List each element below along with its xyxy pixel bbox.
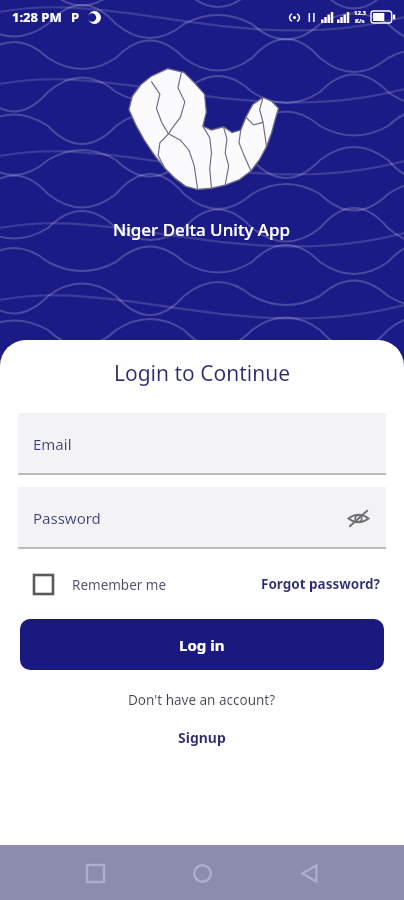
staticText: 12.3 bbox=[354, 9, 366, 17]
staticText: P bbox=[71, 8, 80, 26]
button[interactable]: Signup bbox=[168, 724, 236, 751]
staticText: Password bbox=[33, 508, 101, 528]
button[interactable]: Recent apps bbox=[73, 851, 117, 895]
staticText: Email bbox=[33, 434, 72, 454]
staticText: 1:28 PM bbox=[12, 8, 62, 26]
staticText: Log in bbox=[179, 635, 225, 655]
staticText: Don't have an account? bbox=[128, 691, 276, 709]
staticText: Signup bbox=[178, 728, 226, 747]
staticText: Niger Delta Unity App bbox=[113, 218, 291, 241]
button[interactable]: Back bbox=[287, 851, 331, 895]
button[interactable]: Forgot password? bbox=[259, 571, 382, 597]
button[interactable]: Email bbox=[18, 413, 386, 475]
staticText: Remember me bbox=[72, 576, 167, 594]
button[interactable]: Password bbox=[18, 487, 386, 549]
staticText: Forgot password? bbox=[261, 575, 380, 593]
staticText: Login to Continue bbox=[114, 359, 290, 388]
button[interactable]: Log in bbox=[20, 619, 384, 670]
button[interactable]: Show password bbox=[343, 503, 373, 533]
staticText: K/s bbox=[355, 17, 365, 25]
button[interactable]: Remember me bbox=[34, 575, 173, 594]
button[interactable]: Home bbox=[180, 851, 224, 895]
